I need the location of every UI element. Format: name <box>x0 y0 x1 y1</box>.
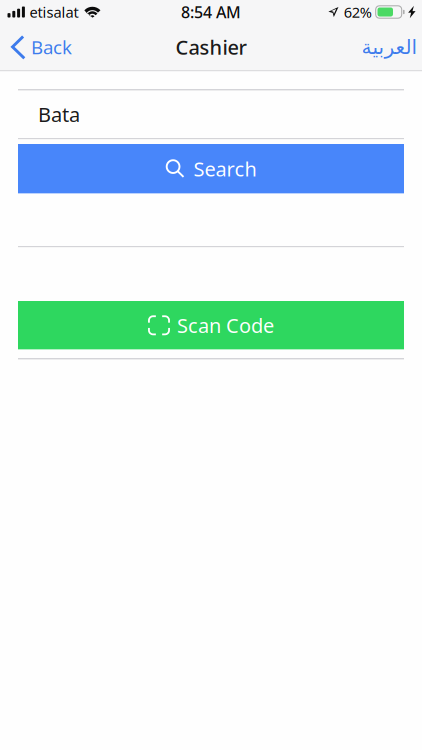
staticText: Scan Code <box>177 312 274 339</box>
staticText: 62% <box>344 2 372 22</box>
staticText: Search <box>193 155 256 182</box>
staticText: 8:54 AM <box>181 1 241 23</box>
staticText: etisalat <box>29 2 78 22</box>
button[interactable]: Scan Code <box>0 301 422 350</box>
staticText: Back <box>31 35 72 59</box>
staticText: Cashier <box>175 34 246 60</box>
button[interactable]: Back <box>0 27 82 67</box>
staticText: Bata <box>38 101 80 127</box>
button[interactable]: العربية <box>351 27 422 67</box>
staticText: العربية <box>361 36 417 58</box>
button[interactable]: Search <box>0 144 422 194</box>
